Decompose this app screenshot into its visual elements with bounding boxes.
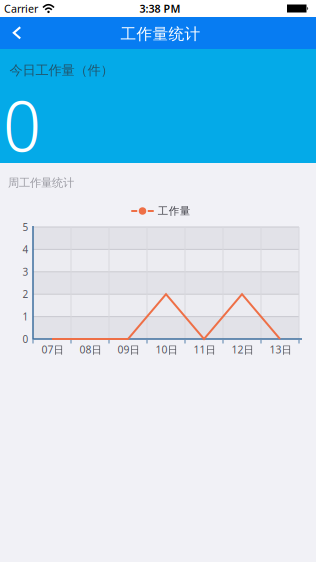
staticText: 08日 — [79, 342, 101, 357]
staticText: 工作量统计 — [120, 24, 200, 44]
staticText: Carrier — [4, 1, 38, 16]
staticText: 周工作量统计 — [8, 175, 74, 190]
staticText: 12日 — [231, 342, 253, 357]
staticText: 5 — [22, 220, 28, 234]
staticText: 工作量 — [158, 204, 191, 218]
staticText: 1 — [22, 310, 28, 323]
button[interactable] — [0, 17, 30, 49]
staticText: 2 — [22, 287, 28, 301]
staticText: 3:38 PM — [139, 1, 180, 16]
staticText: 0 — [3, 76, 41, 172]
staticText: 4 — [22, 243, 28, 256]
staticText: 3 — [22, 265, 28, 279]
staticText: 13日 — [269, 342, 291, 357]
staticText: 07日 — [41, 342, 63, 357]
staticText: 11日 — [193, 342, 215, 357]
staticText: 09日 — [117, 342, 139, 357]
staticText: 10日 — [155, 342, 177, 357]
staticText: 0 — [22, 332, 28, 346]
staticText: 今日工作量（件） — [9, 62, 113, 79]
